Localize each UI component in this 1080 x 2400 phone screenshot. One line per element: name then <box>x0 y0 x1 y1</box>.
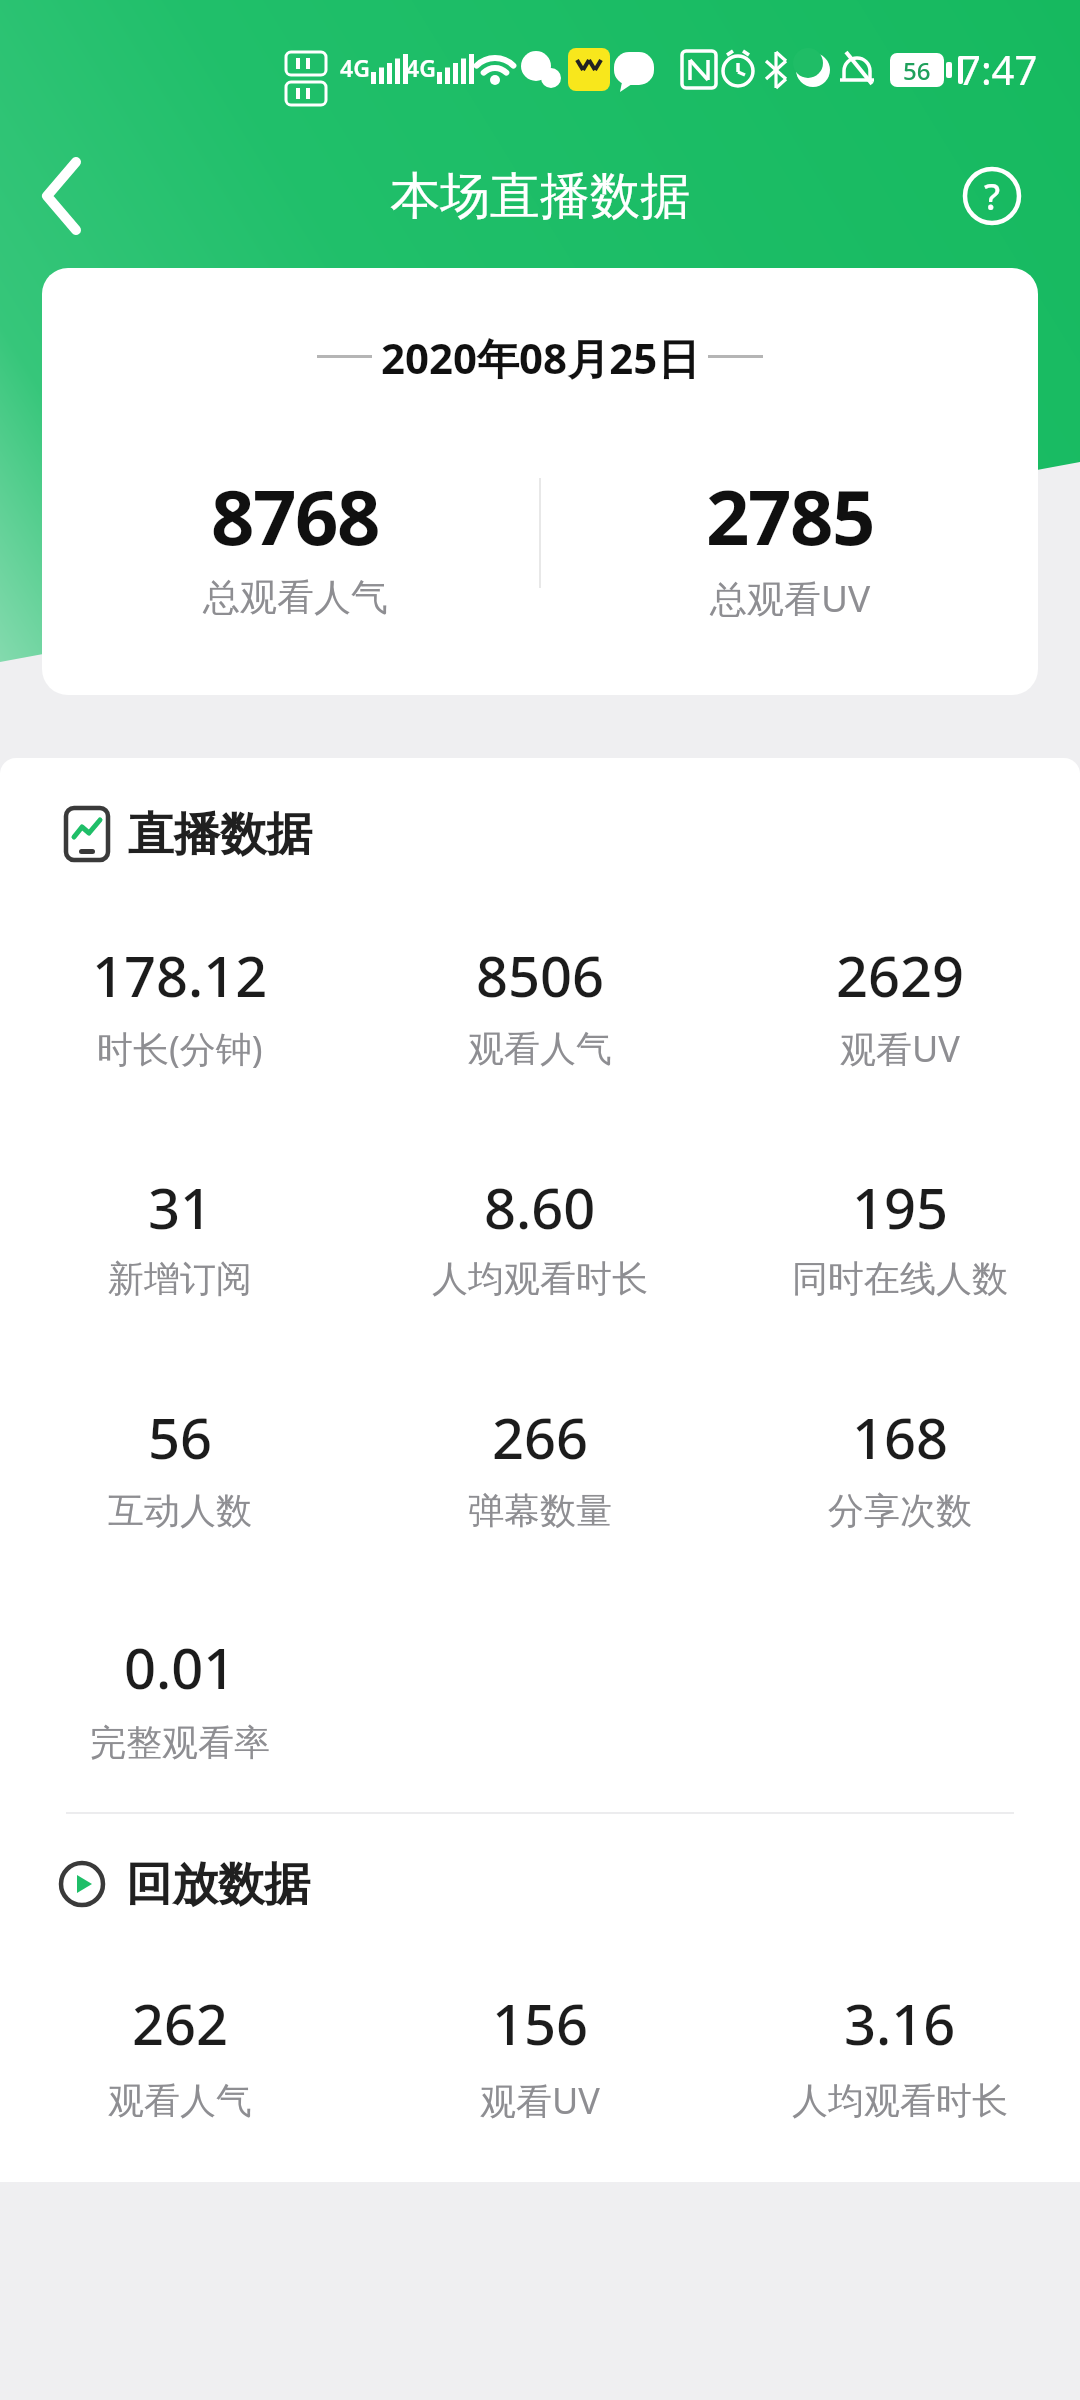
staticText: 4G <box>340 52 370 83</box>
staticText: 总观看UV <box>710 572 871 623</box>
staticText: 直播数据 <box>128 806 312 864</box>
staticText: 56 <box>148 1399 213 1475</box>
staticText: 时长(分钟) <box>97 1024 263 1073</box>
staticText: 观看UV <box>480 2076 600 2125</box>
staticText: 完整观看率 <box>90 1720 270 1765</box>
staticText: 2020年08月25日 <box>381 329 700 386</box>
staticText: 人均观看时长 <box>432 1256 648 1301</box>
staticText: 总观看人气 <box>203 574 388 621</box>
button[interactable] <box>20 156 100 236</box>
staticText: 4G <box>406 52 436 83</box>
staticText: 回放数据 <box>126 1856 310 1914</box>
staticText: 8768 <box>211 464 379 568</box>
staticText: 同时在线人数 <box>792 1256 1008 1301</box>
staticText: 31 <box>148 1169 213 1245</box>
staticText: 3.16 <box>844 1985 956 2061</box>
staticText: 新增订阅 <box>108 1256 252 1301</box>
staticText: 178.12 <box>92 937 268 1013</box>
staticText: 观看人气 <box>108 2078 252 2123</box>
staticText: 观看人气 <box>468 1026 612 1071</box>
staticText: 195 <box>852 1169 949 1245</box>
staticText: ? <box>984 172 1001 221</box>
staticText: 2629 <box>836 937 965 1013</box>
staticText: 0.01 <box>124 1629 236 1705</box>
staticText: 7:47 <box>958 42 1038 96</box>
staticText: 8506 <box>476 937 605 1013</box>
staticText: 156 <box>492 1985 589 2061</box>
staticText: 弹幕数量 <box>468 1488 612 1533</box>
staticText: 56 <box>903 54 931 87</box>
staticText: 分享次数 <box>828 1488 972 1533</box>
staticText: 168 <box>852 1399 949 1475</box>
staticText: 观看UV <box>840 1024 960 1073</box>
staticText: 8.60 <box>484 1169 596 1245</box>
staticText: 2785 <box>706 464 874 568</box>
staticText: 本场直播数据 <box>390 165 690 228</box>
staticText: 互动人数 <box>108 1488 252 1533</box>
staticText: 266 <box>492 1399 589 1475</box>
staticText: 人均观看时长 <box>792 2078 1008 2123</box>
staticText: 262 <box>132 1985 229 2061</box>
